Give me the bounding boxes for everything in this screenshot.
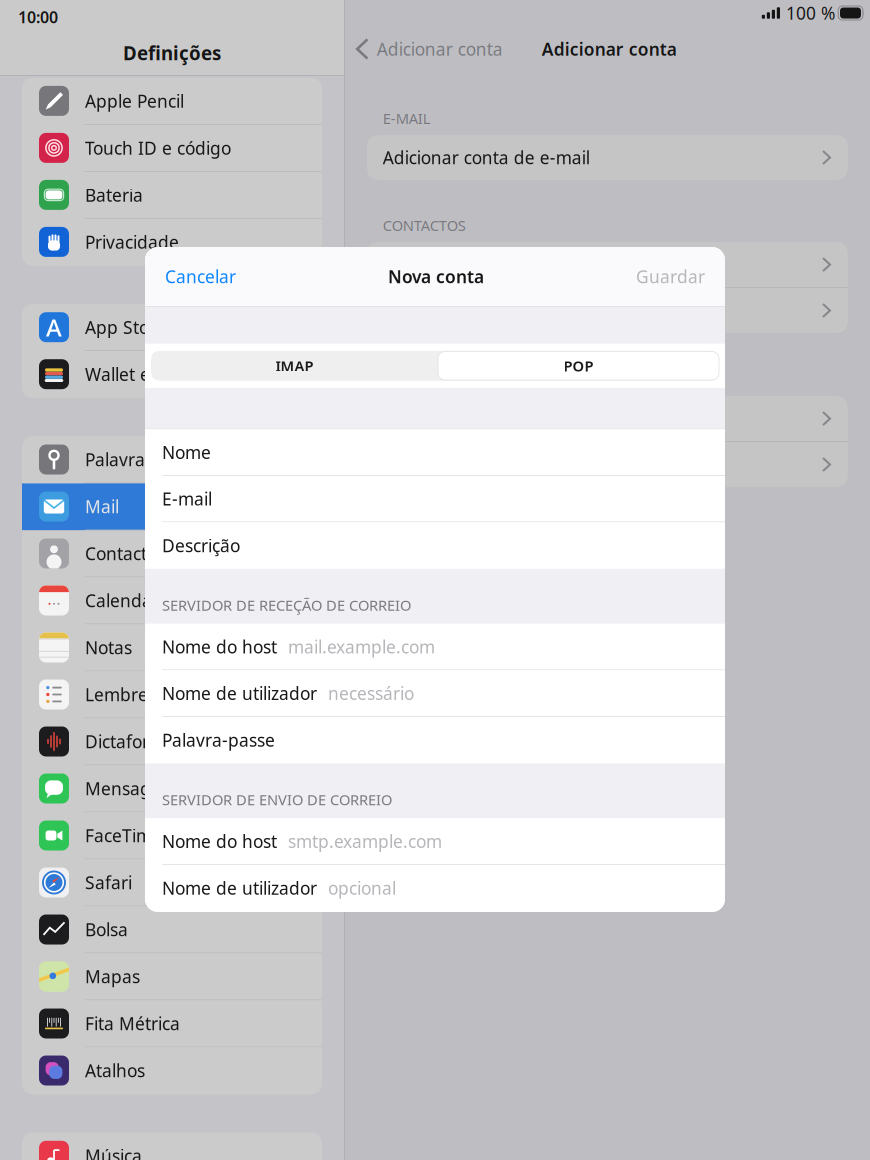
staticText: Cancelar: [165, 265, 236, 288]
staticText: Bolsa: [85, 918, 128, 941]
staticText: E-mail: [162, 487, 212, 510]
staticText: A: [46, 311, 62, 343]
button[interactable]: IMAP: [151, 351, 438, 381]
staticText: Bateria: [85, 183, 143, 206]
staticText: E-MAIL: [383, 108, 431, 128]
button[interactable]: Privacidade: [22, 219, 322, 266]
staticText: SERVIDOR DE ENVIO DE CORREIO: [162, 790, 392, 809]
staticText: Contactos: [85, 542, 165, 565]
staticText: FaceTime: [85, 824, 162, 847]
button[interactable]: Bateria: [22, 172, 322, 219]
staticText: Touch ID e código: [85, 136, 231, 159]
staticText: CONTACTOS: [383, 215, 466, 235]
staticText: Música: [85, 1144, 142, 1160]
staticText: Apple Pencil: [85, 89, 184, 112]
staticText: 100 %: [786, 1, 835, 24]
button[interactable]: Notas: [22, 624, 322, 671]
staticText: Conta do iCloud: [383, 299, 513, 322]
staticText: Nome do host: [162, 635, 277, 658]
staticText: Conta do iCloud: [383, 453, 513, 476]
button[interactable]: Mapas: [22, 953, 322, 1000]
staticText: Adicionar conta: [542, 37, 677, 60]
button[interactable]: A: [22, 304, 322, 351]
staticText: Palavras-passe: [85, 448, 206, 471]
staticText: Notas: [85, 636, 132, 659]
staticText: Nome do host: [162, 830, 277, 853]
staticText: Wallet e Apple Pay: [85, 363, 236, 386]
staticText: Nova conta: [388, 265, 484, 288]
button[interactable]: Wallet e Apple Pay: [22, 351, 322, 398]
staticText: Adicionar conta: [383, 253, 509, 276]
button[interactable]: Mail: [22, 483, 322, 530]
button[interactable]: POP: [438, 352, 719, 380]
button[interactable]: Adicionar conta: [367, 242, 848, 288]
button[interactable]: Touch ID e código: [22, 125, 322, 172]
button[interactable]: Calendário: [22, 577, 322, 624]
staticText: Palavra-passe: [162, 728, 275, 751]
staticText: Adicionar conta de e-mail: [383, 146, 590, 169]
staticText: Privacidade: [85, 230, 179, 253]
staticText: Adicionar conta: [377, 37, 503, 60]
staticText: Guardar: [636, 265, 705, 288]
staticText: Safari: [85, 871, 132, 894]
button[interactable]: Conta do iCloud: [367, 288, 848, 333]
button[interactable]: Mensagens: [22, 765, 322, 812]
button[interactable]: Guardar: [620, 247, 725, 306]
staticText: App Store: [85, 316, 166, 339]
staticText: POP: [563, 356, 593, 376]
staticText: Calendário: [85, 589, 173, 612]
staticText: Atalhos: [85, 1059, 145, 1082]
button[interactable]: Lembretes: [22, 671, 322, 718]
staticText: Nome de utilizador: [162, 876, 317, 899]
button[interactable]: Dictafone: [22, 718, 322, 765]
staticText: Mail: [85, 495, 119, 518]
button[interactable]: Fita Métrica: [22, 1000, 322, 1047]
button[interactable]: Safari: [22, 859, 322, 906]
staticText: CALENDÁRIOS: [383, 369, 480, 389]
button[interactable]: Música: [22, 1133, 322, 1160]
staticText: Mapas: [85, 965, 140, 988]
button[interactable]: Cancelar: [145, 247, 252, 306]
staticText: smtp.example.com: [288, 830, 442, 853]
button[interactable]: Conta do iCloud: [367, 442, 848, 487]
staticText: SERVIDOR DE RECEÇÃO DE CORREIO: [162, 595, 411, 615]
button[interactable]: Adicionar conta de e-mail: [367, 135, 848, 180]
staticText: Nome de utilizador: [162, 682, 317, 705]
staticText: mail.example.com: [288, 635, 435, 658]
button[interactable]: Contactos: [22, 530, 322, 577]
staticText: 10:00: [18, 6, 58, 28]
button[interactable]: Apple Pencil: [22, 78, 322, 125]
button[interactable]: Atalhos: [22, 1047, 322, 1094]
staticText: Fita Métrica: [85, 1012, 180, 1035]
button[interactable]: Palavras-passe: [22, 436, 322, 483]
staticText: Dictafone: [85, 730, 163, 753]
button[interactable]: FaceTime: [22, 812, 322, 859]
staticText: Definições: [123, 41, 221, 65]
staticText: Descrição: [162, 534, 240, 557]
button[interactable]: Bolsa: [22, 906, 322, 953]
button[interactable]: Adicionar conta: [345, 26, 503, 72]
staticText: necessário: [328, 682, 414, 705]
staticText: IMAP: [275, 356, 313, 376]
staticText: Lembretes: [85, 683, 172, 706]
staticText: Nome: [162, 441, 211, 464]
staticText: Mensagens: [85, 777, 180, 800]
button[interactable]: Adicionar conta: [367, 396, 848, 442]
staticText: opcional: [328, 876, 396, 899]
